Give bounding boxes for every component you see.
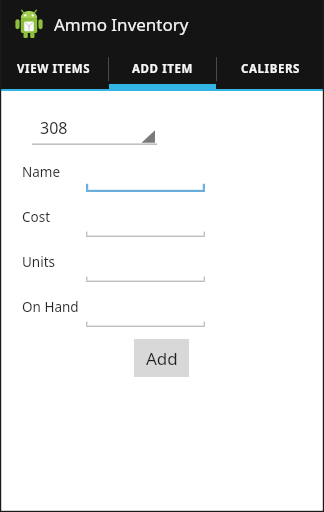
staticText: On Hand xyxy=(22,298,79,316)
staticText: CALIBERS xyxy=(241,61,301,77)
button[interactable]: CALIBERS xyxy=(217,48,324,89)
button[interactable]: Add xyxy=(134,339,189,377)
button[interactable]: VIEW ITEMS xyxy=(0,48,108,89)
button[interactable]: Cost input xyxy=(86,208,205,237)
button[interactable]: Caliber selector xyxy=(32,115,157,145)
staticText: VIEW ITEMS xyxy=(17,61,91,77)
staticText: Units xyxy=(22,253,56,271)
staticText: Name xyxy=(22,163,61,181)
staticText: Ammo Inventory xyxy=(54,13,189,36)
button[interactable]: On Hand input xyxy=(86,298,205,327)
staticText: Cost xyxy=(22,208,51,226)
button[interactable]: ADD ITEM xyxy=(109,48,216,89)
staticText: ADD ITEM xyxy=(132,61,193,77)
button[interactable]: Units input xyxy=(86,253,205,282)
staticText: 308 xyxy=(40,117,68,139)
staticText: Add xyxy=(146,347,178,370)
other: App icon xyxy=(14,9,44,39)
button[interactable]: Name input xyxy=(86,163,205,192)
